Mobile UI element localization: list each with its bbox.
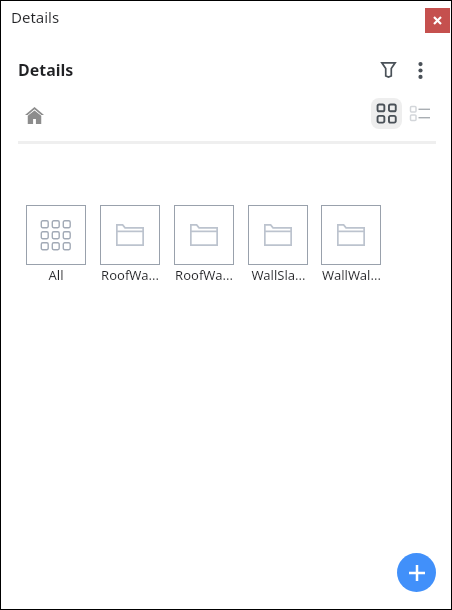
- button[interactable]: [321, 205, 381, 265]
- button[interactable]: [26, 205, 86, 265]
- button[interactable]: [174, 205, 234, 265]
- staticText: RoofWa...: [175, 266, 233, 284]
- button[interactable]: Home: [18, 99, 50, 131]
- button[interactable]: Grid view: [371, 98, 402, 129]
- button[interactable]: Add: [397, 553, 436, 592]
- staticText: All: [48, 266, 64, 284]
- button[interactable]: [248, 205, 308, 265]
- staticText: WallWal...: [322, 266, 381, 284]
- staticText: RoofWa...: [101, 266, 159, 284]
- staticText: WallSla...: [251, 266, 306, 284]
- staticText: Details: [11, 7, 60, 27]
- button[interactable]: Close: [425, 8, 450, 33]
- button[interactable]: Filter: [372, 54, 404, 86]
- staticText: Details: [18, 59, 74, 81]
- button[interactable]: More options: [404, 54, 436, 86]
- button[interactable]: List view: [404, 97, 435, 128]
- button[interactable]: [100, 205, 160, 265]
